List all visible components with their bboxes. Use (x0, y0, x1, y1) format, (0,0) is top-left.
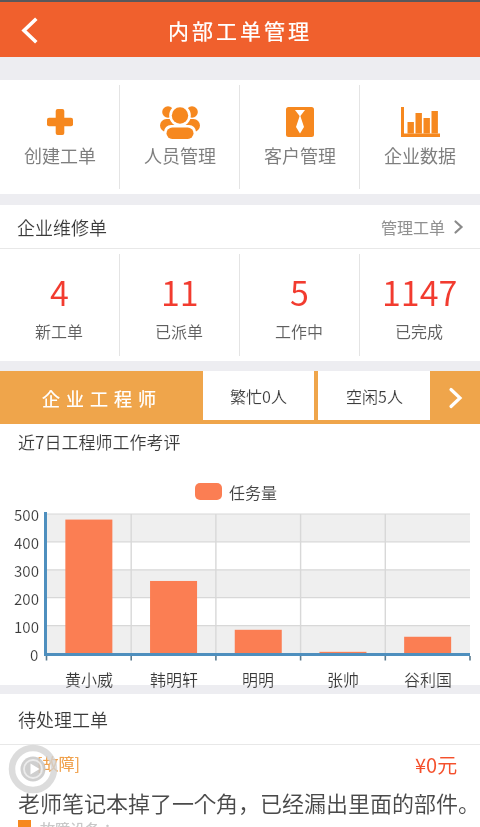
staticText: 创建工单 (24, 142, 96, 168)
staticText: 企业数据 (384, 142, 456, 168)
staticText: 已派单 (155, 319, 204, 342)
staticText: 200 (14, 588, 39, 610)
staticText: 老师笔记本掉了一个角，已经漏出里面的部件。 (18, 786, 480, 818)
button[interactable]: [故障] (0, 745, 480, 827)
staticText: 近7日工程师工作考评 (18, 429, 181, 454)
staticText: 100 (14, 616, 39, 638)
staticText: 300 (14, 560, 39, 582)
button[interactable]: 空闲5人 (318, 371, 430, 420)
staticText: 谷利国 (404, 667, 453, 690)
staticText: 空闲5人 (346, 384, 403, 407)
staticText: 黄小威 (65, 667, 114, 690)
button[interactable]: 企业维修单 (0, 205, 480, 248)
staticText: 4 (50, 267, 69, 316)
button[interactable]: 客户管理 (240, 80, 359, 194)
staticText: 管理工单 (381, 215, 446, 238)
staticText: 繁忙0人 (230, 384, 287, 407)
staticText: ¥0元 (415, 750, 458, 779)
button[interactable]: 创建工单 (0, 80, 119, 194)
staticText: 人员管理 (144, 142, 216, 168)
staticText: 内部工单管理 (168, 15, 312, 45)
staticText: 韩明轩 (150, 667, 199, 690)
staticText: 企业维修单 (17, 214, 107, 240)
staticText: 500 (14, 504, 39, 526)
staticText: 客户管理 (264, 142, 336, 168)
staticText: 400 (14, 532, 39, 554)
staticText: 明明 (242, 667, 275, 690)
button[interactable]: 5 (240, 249, 359, 361)
button[interactable] (430, 371, 480, 424)
staticText: 工作中 (275, 319, 324, 342)
button[interactable]: 企业工程师 (0, 371, 203, 424)
staticText: 11 (161, 267, 199, 316)
button[interactable]: 4 (0, 249, 119, 361)
staticText: 5 (290, 267, 309, 316)
staticText: [故障] (37, 751, 80, 774)
button[interactable]: 繁忙0人 (203, 371, 314, 420)
staticText: 张帅 (327, 667, 360, 690)
staticText: 待处理工单 (18, 706, 108, 732)
button[interactable]: 1147 (360, 249, 479, 361)
staticText: 已完成 (395, 319, 444, 342)
button[interactable]: 企业数据 (360, 80, 479, 194)
staticText: 0 (30, 644, 39, 666)
button[interactable] (0, 2, 55, 57)
button[interactable]: 11 (120, 249, 239, 361)
staticText: 1147 (382, 267, 458, 316)
staticText: 新工单 (35, 319, 84, 342)
button[interactable]: 人员管理 (120, 80, 239, 194)
staticText: 任务量 (229, 480, 278, 503)
staticText: 故障设备： (40, 818, 116, 827)
staticText: 企业工程师 (42, 385, 162, 411)
